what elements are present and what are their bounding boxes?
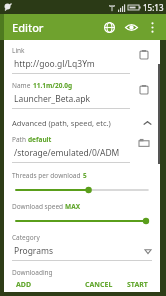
button[interactable]: Paste xyxy=(136,46,152,62)
button[interactable]: START xyxy=(123,277,152,292)
button[interactable]: Paste xyxy=(136,81,152,97)
staticText: Advanced (path, speed, etc.) xyxy=(12,118,143,128)
staticText: Programs xyxy=(14,245,145,257)
staticText: MAX xyxy=(65,202,80,211)
staticText: 15:13 xyxy=(143,2,164,13)
staticText: Downloading xyxy=(12,268,53,277)
staticText: Launcher_Beta.apk xyxy=(14,93,91,105)
staticText: /storage/emulated/0/ADM xyxy=(14,147,120,159)
button[interactable]: Choose folder xyxy=(136,135,152,151)
staticText: Name xyxy=(12,81,33,90)
button[interactable]: Preview xyxy=(120,16,142,38)
button[interactable]: More options xyxy=(142,17,162,37)
staticText: Download speed xyxy=(12,202,65,211)
button[interactable]: Advanced (path, speed, etc.) xyxy=(12,118,152,128)
button[interactable]: CANCEL xyxy=(81,277,117,292)
staticText: CANCEL xyxy=(85,280,113,289)
staticText: START xyxy=(127,280,148,289)
staticText: Editor xyxy=(12,20,44,35)
staticText: Path xyxy=(12,135,28,144)
button[interactable] xyxy=(16,185,148,195)
button[interactable]: Browser xyxy=(98,16,120,38)
button[interactable]: Category xyxy=(12,233,152,261)
staticText: 5 xyxy=(83,171,87,180)
button[interactable] xyxy=(16,216,148,226)
staticText: Link xyxy=(12,46,25,55)
staticText: default xyxy=(28,135,52,144)
staticText: ADD xyxy=(16,280,32,289)
staticText: http://goo.gl/Lq3Ym xyxy=(14,58,95,70)
staticText: 11.1m/20.0g xyxy=(33,81,73,90)
button[interactable]: ADD xyxy=(12,277,36,292)
staticText: Category xyxy=(12,233,40,242)
staticText: Threads per download xyxy=(12,171,83,180)
